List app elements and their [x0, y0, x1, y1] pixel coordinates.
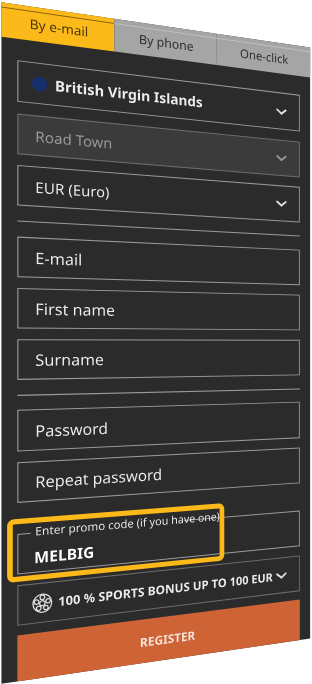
button[interactable]: Repeat password: [17, 448, 300, 503]
staticText: Repeat password: [35, 464, 163, 492]
staticText: REGISTER: [140, 627, 196, 650]
button[interactable]: First name: [17, 288, 300, 330]
staticText: EUR (Euro): [35, 177, 110, 202]
button[interactable]: By phone: [114, 19, 217, 65]
button[interactable]: EUR (Euro): [17, 165, 300, 222]
button[interactable]: Road Town: [17, 114, 300, 177]
staticText: First name: [35, 298, 115, 320]
button[interactable]: E-mail: [17, 237, 300, 285]
staticText: British Virgin Islands: [55, 75, 203, 111]
staticText: 100 % SPORTS BONUS UP TO 100 EUR: [58, 569, 273, 609]
staticText: E-mail: [35, 247, 83, 270]
button[interactable]: Password: [17, 402, 300, 451]
button[interactable]: One-click: [217, 34, 310, 77]
staticText: Road Town: [35, 126, 112, 153]
button[interactable]: REGISTER: [17, 600, 300, 681]
staticText: By e-mail: [30, 15, 88, 41]
staticText: Surname: [35, 349, 104, 370]
staticText: MELBIG: [34, 541, 95, 567]
button[interactable]: By e-mail: [1, 2, 114, 52]
staticText: By phone: [139, 30, 194, 55]
staticText: Enter promo code (if you have one): [35, 508, 221, 539]
staticText: Password: [35, 417, 108, 441]
button[interactable]: Surname: [17, 339, 300, 380]
button[interactable]: 100 % SPORTS BONUS UP TO 100 EUR: [17, 555, 300, 626]
button[interactable]: British Virgin Islands: [17, 60, 300, 131]
button[interactable]: MELBIG: [17, 510, 300, 574]
staticText: One-click: [240, 45, 288, 68]
